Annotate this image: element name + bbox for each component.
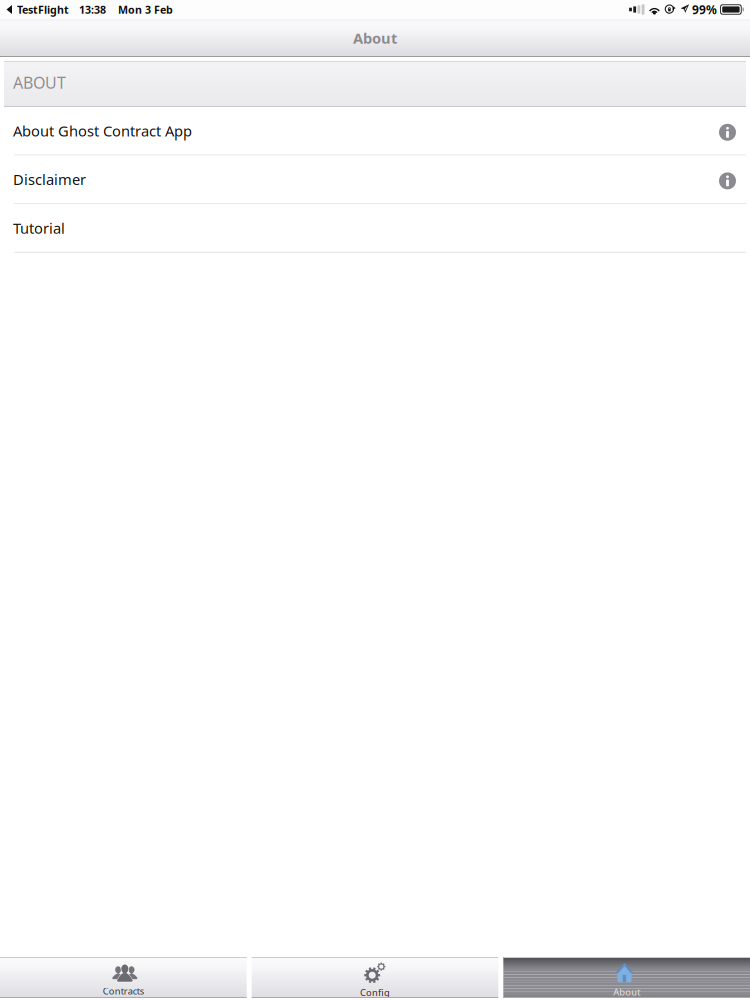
staticText: About Ghost Contract App xyxy=(13,121,192,141)
button[interactable]: Config xyxy=(252,957,498,998)
button[interactable]: Tutorial xyxy=(4,204,746,253)
staticText: TestFlight xyxy=(17,2,69,17)
staticText: Mon 3 Feb xyxy=(118,2,173,17)
staticText: 13:38 xyxy=(79,2,106,17)
button[interactable]: About Ghost Contract App xyxy=(4,107,746,156)
staticText: Contracts xyxy=(103,985,144,997)
staticText: Tutorial xyxy=(13,218,65,238)
button[interactable]: About xyxy=(503,957,750,998)
button[interactable]: Disclaimer xyxy=(4,156,746,204)
button[interactable]: Contracts xyxy=(0,957,247,998)
staticText: ABOUT xyxy=(13,72,66,93)
staticText: About xyxy=(353,28,397,48)
staticText: Disclaimer xyxy=(13,170,86,189)
staticText: About xyxy=(613,986,640,998)
staticText: Config xyxy=(360,986,390,999)
staticText: 99% xyxy=(692,1,717,17)
